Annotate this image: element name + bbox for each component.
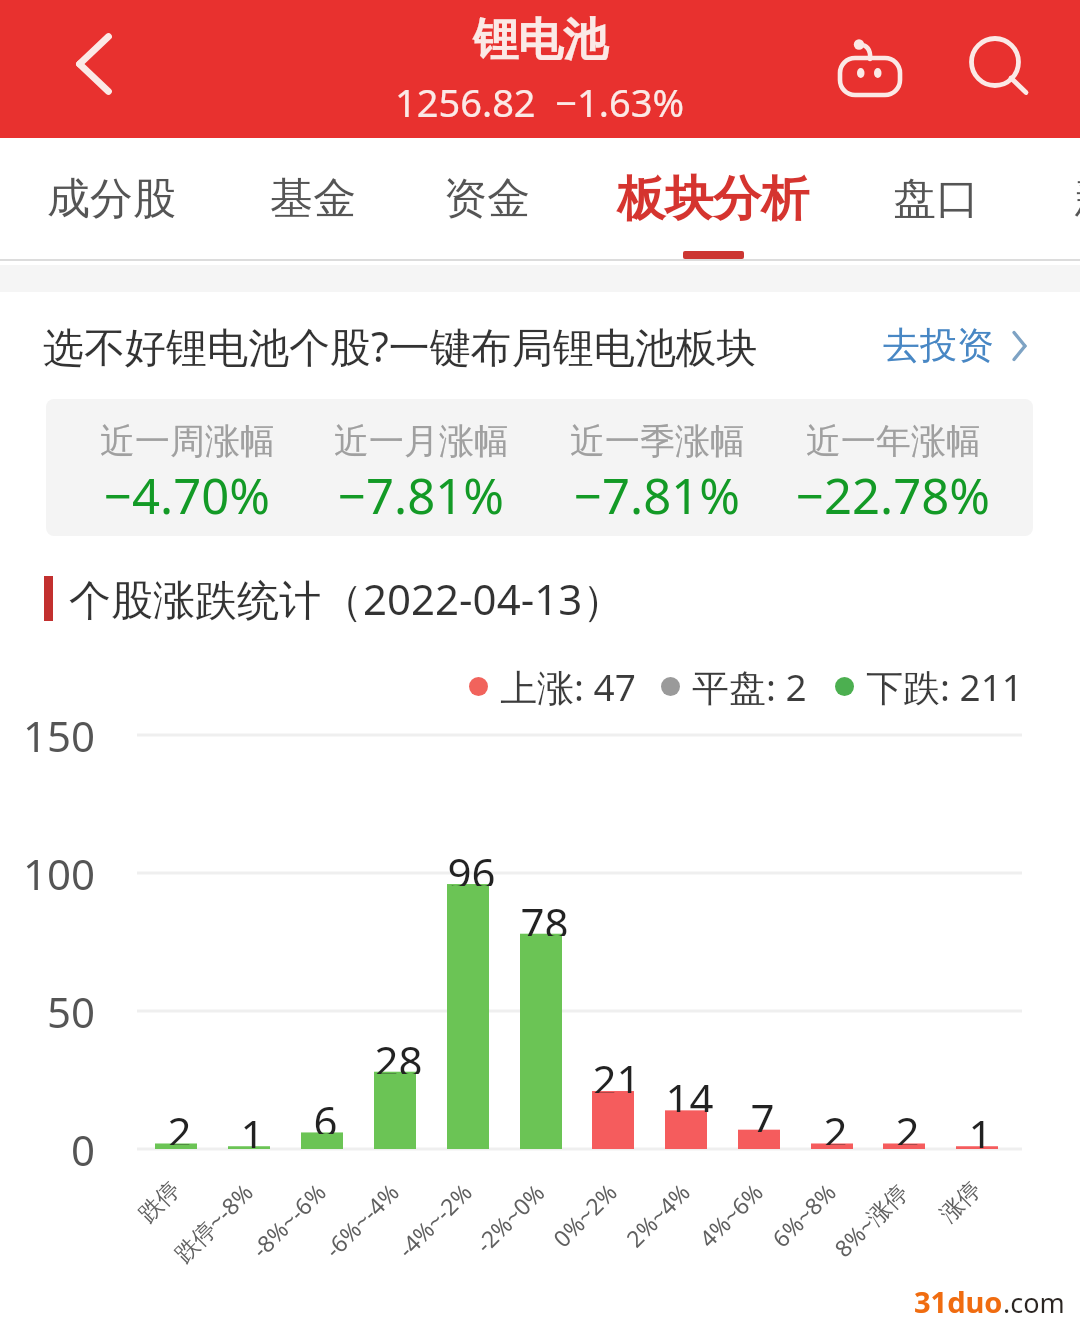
button[interactable]: 成分股 bbox=[1, 138, 221, 259]
staticText: 0%~2% bbox=[546, 1176, 623, 1253]
button[interactable]: 基金 bbox=[203, 138, 423, 259]
button[interactable]: 近一月涨幅 bbox=[271, 399, 571, 536]
button[interactable]: Assistant bbox=[835, 25, 915, 105]
staticText: 14 bbox=[665, 1070, 714, 1112]
staticText: 近一月涨幅 bbox=[334, 419, 509, 463]
staticText: 0 bbox=[70, 1121, 95, 1178]
staticText: 4%~6% bbox=[692, 1176, 769, 1253]
staticText: 2 bbox=[823, 1103, 848, 1145]
staticText: −7.81% bbox=[338, 462, 504, 529]
staticText: 50 bbox=[46, 983, 95, 1040]
staticText: 28 bbox=[374, 1032, 423, 1074]
staticText: -8%~-6% bbox=[244, 1176, 332, 1264]
staticText: -4%~-2% bbox=[390, 1176, 478, 1264]
staticText: 个股涨跌统计（2022-04-13） bbox=[69, 570, 625, 627]
button[interactable]: 选不好锂电池个股?一键布局锂电池板块 bbox=[0, 292, 1080, 399]
staticText: 78 bbox=[520, 894, 569, 936]
staticText: 平盘: 2 bbox=[692, 661, 807, 712]
button[interactable]: 近一季涨幅 bbox=[507, 399, 807, 536]
button[interactable]: 近一年涨幅 bbox=[743, 399, 1033, 536]
button[interactable]: 平盘: 2 bbox=[661, 657, 807, 715]
staticText: 2 bbox=[895, 1103, 920, 1145]
staticText: −22.78% bbox=[796, 462, 990, 529]
staticText: 96 bbox=[447, 844, 496, 886]
staticText: 下跌: 211 bbox=[866, 661, 1024, 712]
button[interactable]: 资金 bbox=[377, 138, 597, 259]
staticText: 锂电池 bbox=[473, 12, 608, 69]
button[interactable]: Search bbox=[955, 25, 1035, 105]
button[interactable]: 板块分析 bbox=[603, 138, 823, 259]
staticText: 6%~8% bbox=[765, 1176, 842, 1253]
button[interactable]: 盘口 bbox=[826, 138, 1046, 259]
button[interactable]: 近一周涨幅 bbox=[46, 399, 337, 536]
staticText: 新股 bbox=[1074, 172, 1080, 226]
staticText: 100 bbox=[22, 845, 95, 902]
staticText: 8%~涨停 bbox=[827, 1176, 914, 1263]
staticText: 6 bbox=[313, 1092, 338, 1134]
staticText: 31duo bbox=[914, 1282, 1003, 1321]
staticText: 跌停~-8% bbox=[167, 1176, 259, 1268]
staticText: .com bbox=[1003, 1284, 1065, 1321]
button[interactable]: 新股 bbox=[1007, 138, 1080, 259]
staticText: 基金 bbox=[270, 172, 356, 226]
staticText: 1256.82 −1.63% bbox=[395, 76, 685, 128]
staticText: 上涨: 47 bbox=[500, 661, 636, 712]
staticText: 2%~4% bbox=[619, 1176, 696, 1253]
staticText: 资金 bbox=[444, 172, 530, 226]
staticText: -2%~0% bbox=[468, 1176, 551, 1259]
staticText: 选不好锂电池个股?一键布局锂电池板块 bbox=[43, 318, 758, 374]
staticText: 近一周涨幅 bbox=[100, 419, 275, 463]
button[interactable]: Back bbox=[48, 27, 132, 111]
staticText: 盘口 bbox=[893, 172, 979, 226]
staticText: 涨停 bbox=[934, 1175, 987, 1228]
staticText: −4.70% bbox=[104, 462, 270, 529]
staticText: 1 bbox=[240, 1106, 265, 1148]
staticText: 150 bbox=[22, 707, 95, 764]
staticText: −7.81% bbox=[574, 462, 740, 529]
staticText: 跌停 bbox=[133, 1175, 186, 1228]
staticText: 2 bbox=[167, 1103, 192, 1145]
staticText: 7 bbox=[750, 1090, 775, 1132]
staticText: 1 bbox=[968, 1106, 993, 1148]
staticText: 成分股 bbox=[47, 172, 176, 226]
button[interactable]: 下跌: 211 bbox=[835, 657, 1024, 715]
staticText: 近一年涨幅 bbox=[806, 419, 981, 463]
button[interactable]: 上涨: 47 bbox=[469, 657, 636, 715]
staticText: -6%~-4% bbox=[317, 1176, 405, 1264]
staticText: 近一季涨幅 bbox=[570, 419, 745, 463]
staticText: 去投资 bbox=[883, 322, 994, 369]
staticText: 板块分析 bbox=[617, 169, 809, 229]
staticText: 21 bbox=[592, 1051, 641, 1093]
